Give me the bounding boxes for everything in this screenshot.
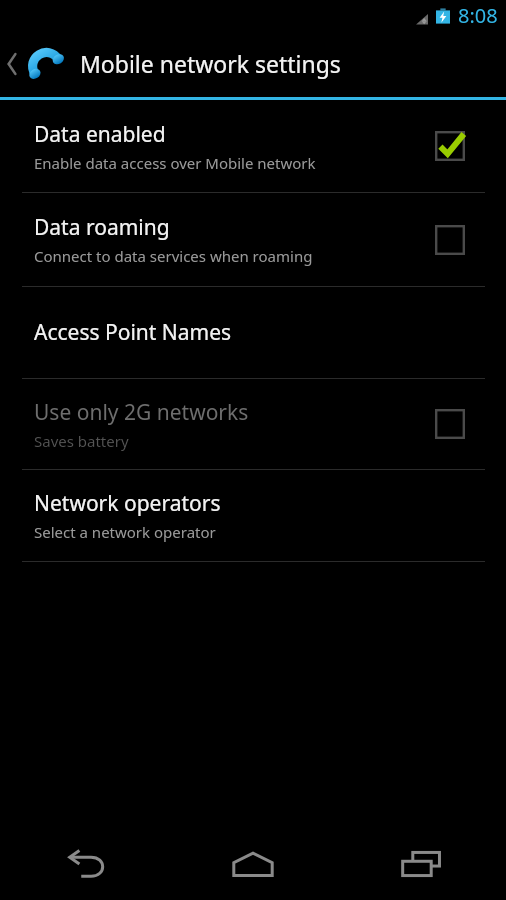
button[interactable]: Data roaming	[428, 218, 472, 262]
staticText: Data enabled	[34, 120, 166, 149]
button[interactable]: Data enabled	[0, 100, 506, 192]
staticText: Connect to data services when roaming	[34, 246, 313, 266]
button[interactable]: Network operators	[0, 470, 506, 561]
button[interactable]: Access Point Names	[0, 287, 506, 378]
staticText: 8:08	[458, 2, 498, 29]
staticText: Mobile network settings	[80, 48, 341, 79]
staticText: Data roaming	[34, 213, 170, 242]
button[interactable]: Navigate up	[0, 30, 72, 97]
staticText: Select a network operator	[34, 522, 216, 542]
button[interactable]: Recent apps	[337, 828, 506, 900]
staticText: Enable data access over Mobile network	[34, 153, 316, 173]
staticText: Network operators	[34, 489, 221, 518]
button[interactable]: Use only 2G networks	[428, 402, 472, 446]
button[interactable]: Data enabled	[428, 124, 472, 168]
staticText: Use only 2G networks	[34, 398, 249, 427]
button[interactable]: Back	[0, 828, 168, 900]
staticText: Saves battery	[34, 431, 129, 451]
button[interactable]: Use only 2G networks	[0, 379, 506, 469]
staticText: Access Point Names	[34, 318, 232, 347]
button[interactable]: Home	[168, 828, 337, 900]
button[interactable]: Data roaming	[0, 193, 506, 286]
